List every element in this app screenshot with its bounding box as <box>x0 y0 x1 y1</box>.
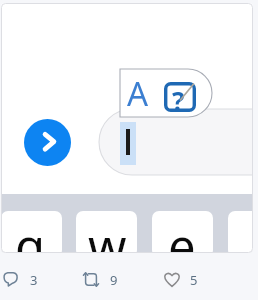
button[interactable] <box>1 211 62 253</box>
button[interactable]: Retweet <box>77 268 121 290</box>
staticText: 5 <box>190 271 198 289</box>
staticText: 9 <box>110 271 118 289</box>
button[interactable]: A <box>120 69 212 117</box>
button[interactable] <box>228 211 253 253</box>
button[interactable]: Like <box>159 268 201 290</box>
button[interactable] <box>76 211 137 253</box>
button[interactable]: Reply <box>0 268 41 290</box>
staticText: e <box>168 213 196 253</box>
staticText: ? <box>172 83 185 113</box>
button[interactable]: q <box>1 3 253 253</box>
staticText: A <box>127 71 149 116</box>
staticText: 3 <box>30 271 38 289</box>
staticText: w <box>88 213 127 253</box>
staticText: q <box>15 213 46 253</box>
button[interactable]: Next <box>24 119 71 166</box>
button[interactable] <box>152 211 213 253</box>
